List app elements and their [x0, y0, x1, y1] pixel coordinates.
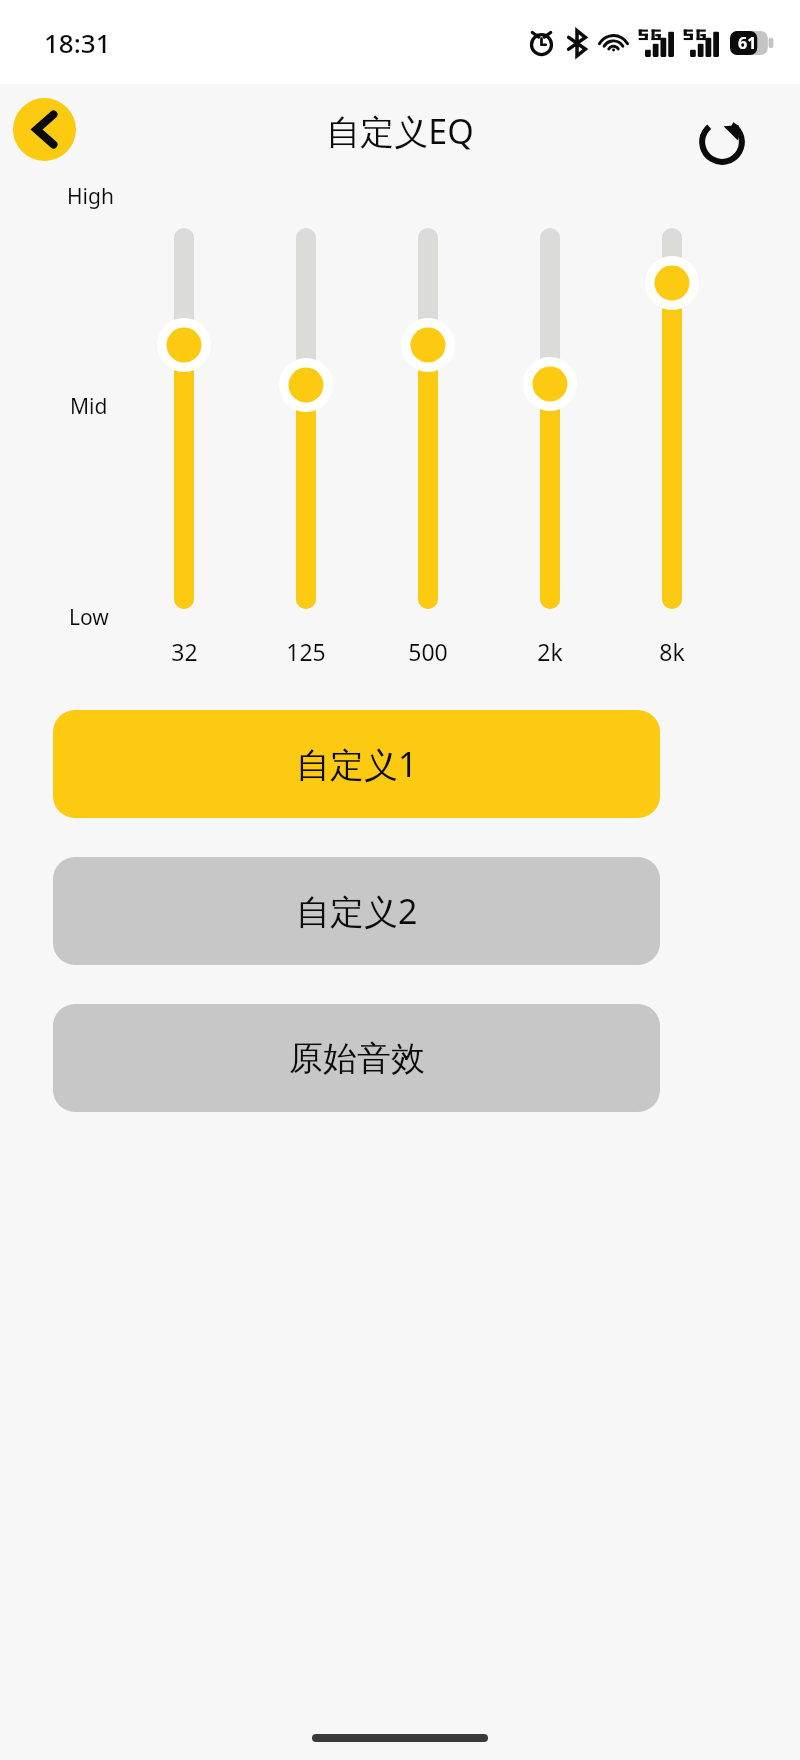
staticText: Low [69, 603, 109, 632]
staticText: 自定义EQ [326, 108, 474, 154]
staticText: 8k [659, 636, 685, 667]
staticText: 500 [408, 636, 448, 667]
button[interactable]: 自定义1 [53, 710, 660, 818]
staticText: 自定义2 [296, 888, 418, 934]
staticText: 32 [171, 636, 198, 667]
staticText: High [67, 182, 114, 211]
button[interactable]: Refresh [690, 110, 754, 174]
staticText: 18:31 [44, 25, 111, 60]
staticText: 2k [537, 636, 563, 667]
button[interactable]: 原始音效 [53, 1004, 660, 1112]
staticText: 61 [738, 32, 757, 54]
button[interactable]: Back [13, 98, 76, 161]
button[interactable]: 自定义2 [53, 857, 660, 965]
staticText: 自定义1 [296, 741, 418, 787]
staticText: Mid [70, 392, 108, 421]
staticText: 原始音效 [289, 1037, 425, 1080]
staticText: 125 [286, 636, 326, 667]
